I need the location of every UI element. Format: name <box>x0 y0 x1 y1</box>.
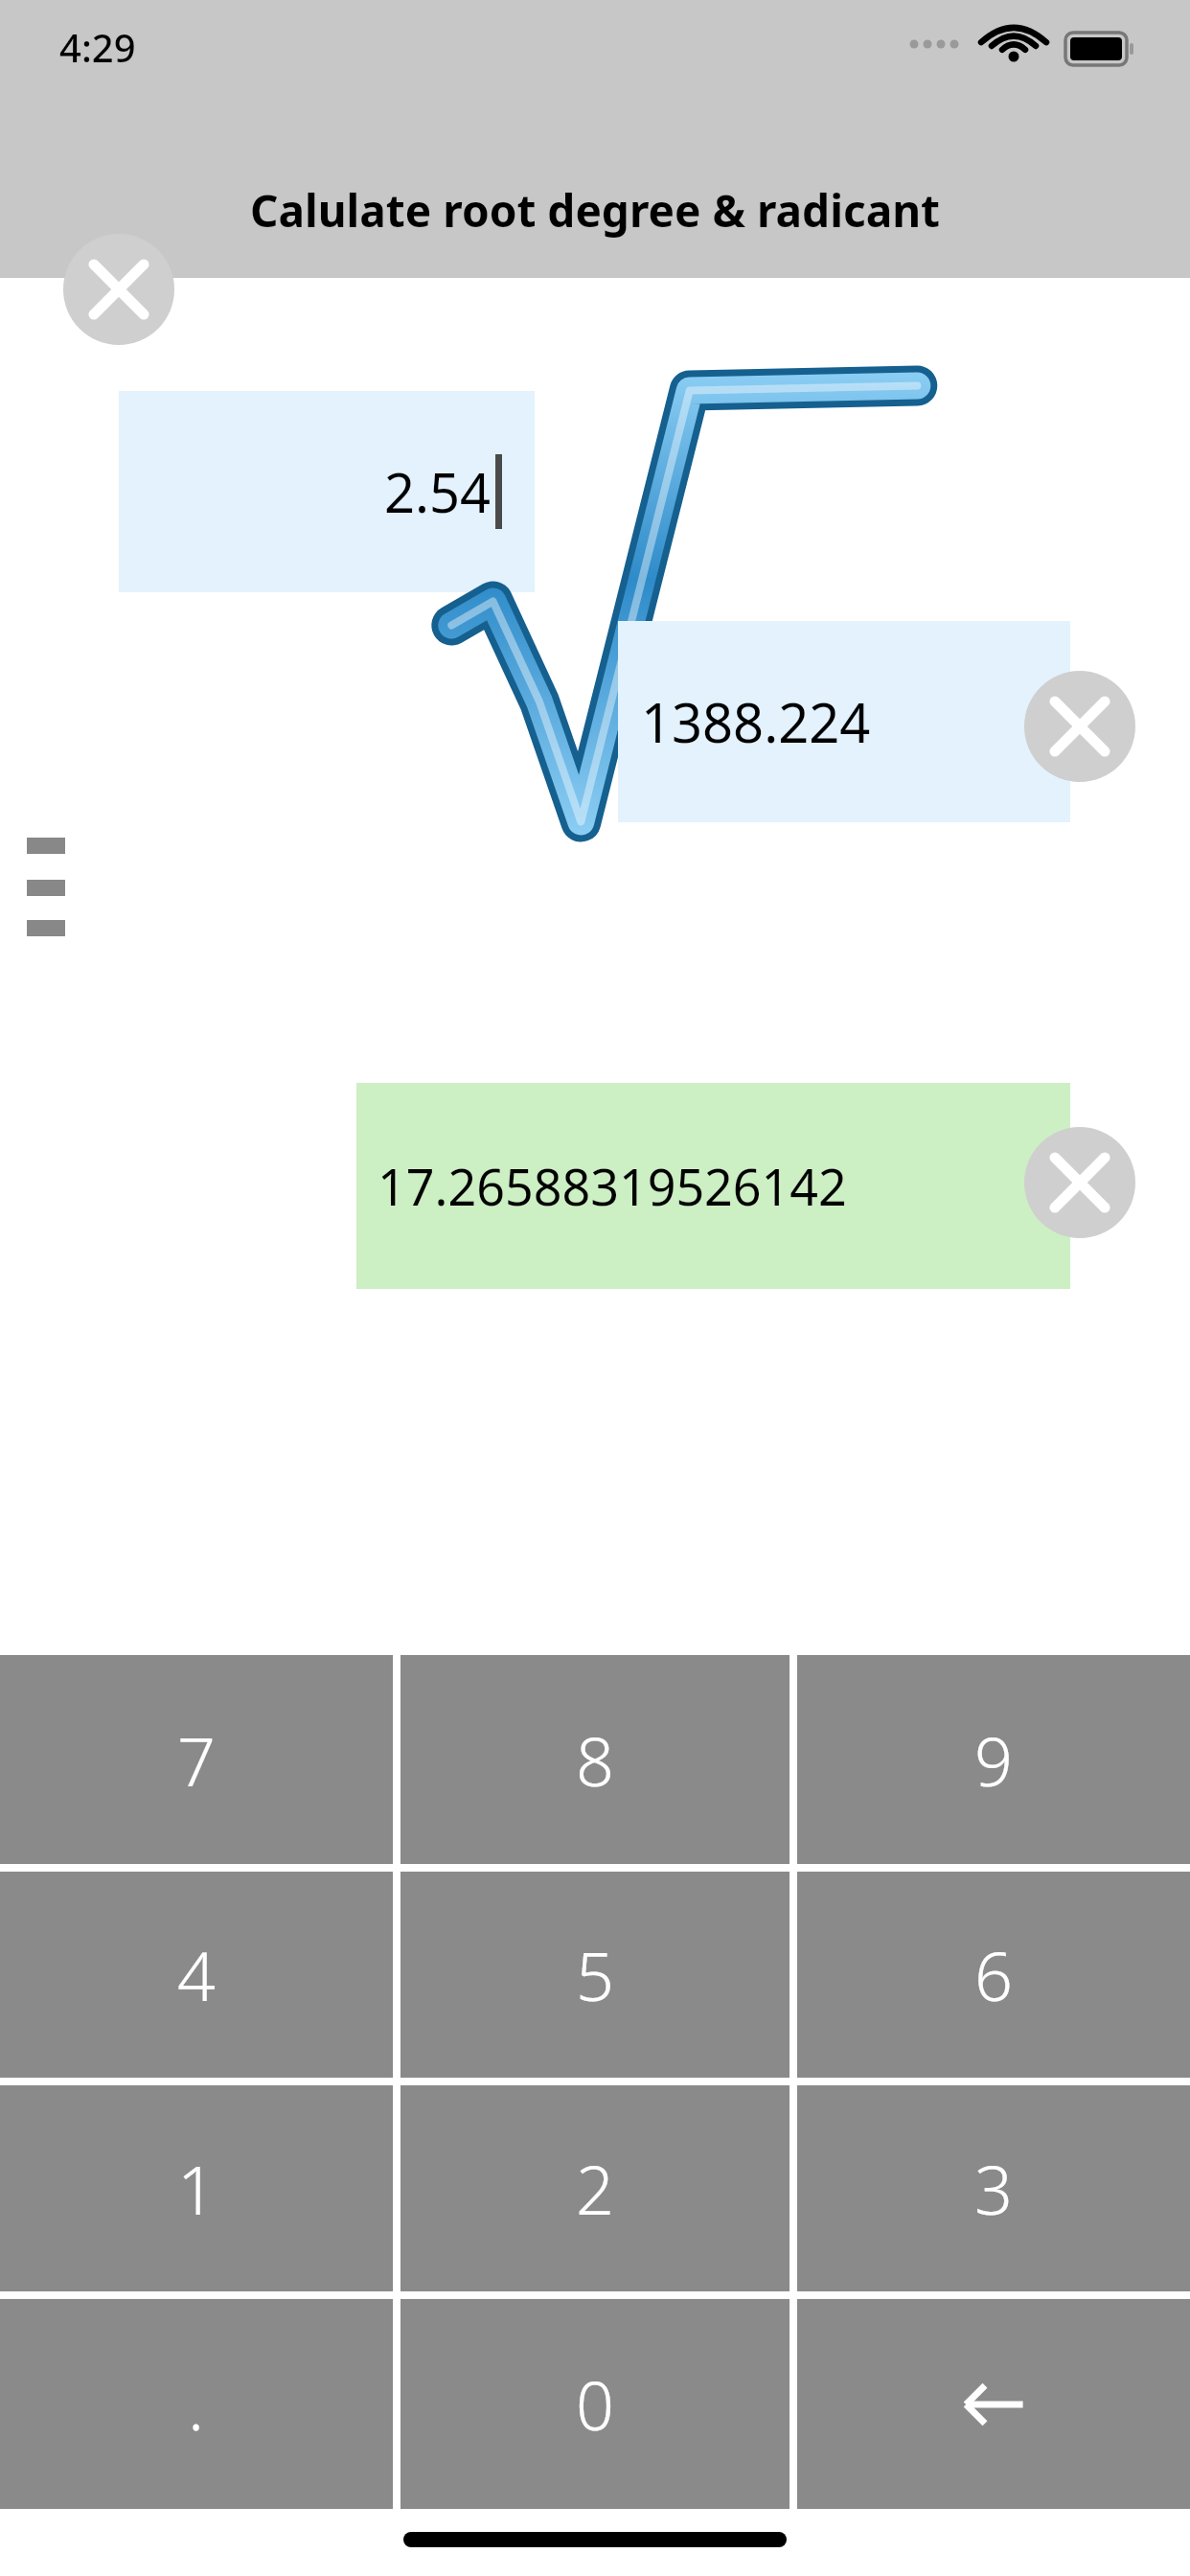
staticText: 2.54 <box>384 455 492 528</box>
button[interactable]: Clear radicand <box>1024 671 1135 782</box>
button[interactable]: . <box>0 2299 393 2509</box>
button[interactable]: 3 <box>797 2085 1190 2291</box>
button[interactable]: 5 <box>400 1872 790 2078</box>
button[interactable]: Backspace <box>797 2299 1190 2509</box>
staticText: 8 <box>576 1714 614 1805</box>
button[interactable]: 2 <box>400 2085 790 2291</box>
button[interactable]: 8 <box>400 1655 790 1864</box>
staticText: . <box>188 2358 205 2449</box>
button[interactable]: Clear degree <box>63 234 174 345</box>
button[interactable]: 7 <box>0 1655 393 1864</box>
staticText: 7 <box>177 1714 216 1805</box>
staticText: 4:29 <box>59 21 136 73</box>
button[interactable]: 17.26588319526142 <box>356 1083 1070 1289</box>
staticText: 9 <box>974 1714 1013 1805</box>
button[interactable]: 6 <box>797 1872 1190 2078</box>
button[interactable]: 2.54 <box>119 391 535 592</box>
button[interactable]: 4 <box>0 1872 393 2078</box>
staticText: 4 <box>177 1929 216 2020</box>
button[interactable]: 9 <box>797 1655 1190 1864</box>
staticText: 1 <box>177 2143 216 2234</box>
staticText: 5 <box>576 1929 614 2020</box>
staticText: 2 <box>576 2143 614 2234</box>
staticText: 1388.224 <box>641 685 871 758</box>
staticText: 0 <box>576 2358 614 2449</box>
button[interactable]: 1 <box>0 2085 393 2291</box>
staticText: 17.26588319526142 <box>378 1152 847 1220</box>
button[interactable]: Clear result <box>1024 1127 1135 1238</box>
staticText: 6 <box>974 1929 1013 2020</box>
staticText: 3 <box>974 2143 1013 2234</box>
button[interactable]: Menu <box>19 826 75 941</box>
button[interactable]: 1388.224 <box>618 621 1070 822</box>
staticText: Calulate root degree & radicant <box>0 180 1190 241</box>
button[interactable]: 0 <box>400 2299 790 2509</box>
